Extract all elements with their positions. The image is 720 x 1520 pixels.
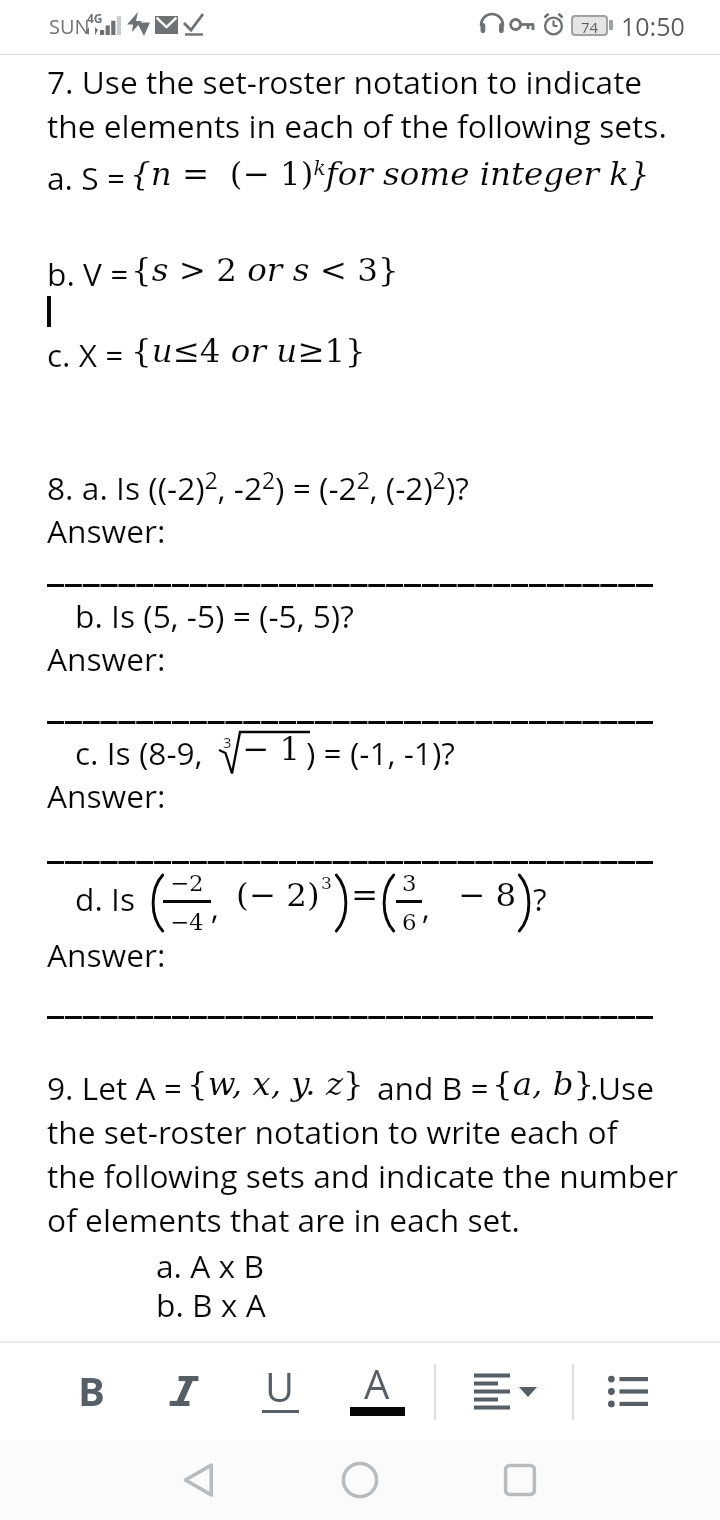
staticText: , xyxy=(211,885,219,928)
staticText: = xyxy=(351,876,379,914)
staticText: 3 xyxy=(321,873,332,893)
staticText: 9. Let A = xyxy=(47,1066,182,1109)
staticText: a. A x B xyxy=(156,1244,264,1287)
staticText: (− 2) xyxy=(236,876,320,914)
staticText: d. Is xyxy=(75,877,136,920)
staticText: 10:50 xyxy=(621,9,685,43)
staticText: b. Is (5, -5) = (-5, 5)? xyxy=(75,594,354,637)
staticText: the following sets and indicate the numb… xyxy=(47,1154,678,1197)
button[interactable]: B xyxy=(48,1341,134,1440)
staticText: {s > 2 or s < 3} xyxy=(131,251,399,289)
staticText: 6 xyxy=(402,909,417,936)
button[interactable]: Recent apps xyxy=(480,1440,560,1520)
button[interactable]: Back xyxy=(159,1440,239,1520)
staticText: −4 xyxy=(170,909,204,936)
staticText: . xyxy=(590,1066,599,1109)
staticText: ? xyxy=(533,877,547,920)
staticText: 74 xyxy=(581,17,599,34)
staticText: − 1 xyxy=(242,730,301,768)
staticText: and B = xyxy=(377,1066,489,1109)
staticText: 8. a. Is ((-2)2, -22) = (-22, (-2)2)? xyxy=(47,465,469,509)
staticText: Answer: xyxy=(47,637,166,680)
staticText: Answer: xyxy=(47,509,166,552)
staticText: a. S = xyxy=(47,156,134,199)
staticText: A xyxy=(364,1356,390,1410)
staticText: {w, x, y. z} xyxy=(187,1065,364,1103)
staticText: ) = (-1, -1)? xyxy=(306,731,455,774)
staticText: U xyxy=(265,1359,295,1413)
staticText: Use xyxy=(598,1066,654,1109)
staticText: {u≤4 or u≥1} xyxy=(131,332,366,370)
staticText: c. Is (8-9, xyxy=(75,731,203,774)
staticText: 3 xyxy=(402,870,417,897)
staticText: of elements that are in each set. xyxy=(47,1198,520,1241)
staticText: b. B x A xyxy=(156,1283,266,1326)
staticText: , xyxy=(422,885,430,928)
staticText: 7. Use the set-roster notation to indica… xyxy=(47,60,643,103)
staticText: {a, b} xyxy=(492,1065,595,1103)
button[interactable]: Bulleted list xyxy=(586,1341,672,1440)
staticText: B xyxy=(78,1363,105,1417)
button[interactable]: Home xyxy=(320,1440,400,1520)
button[interactable]: A xyxy=(334,1341,420,1440)
staticText: the set-roster notation to write each of xyxy=(47,1110,618,1153)
staticText: Answer: xyxy=(47,774,166,817)
staticText: Answer: xyxy=(47,933,166,976)
staticText: −2 xyxy=(170,870,204,897)
staticText: 3 xyxy=(223,732,232,752)
staticText: 4G xyxy=(87,10,103,26)
button[interactable] xyxy=(142,1341,228,1440)
staticText: − 8 xyxy=(458,876,517,914)
button[interactable]: U xyxy=(237,1341,323,1440)
button[interactable]: Alignment xyxy=(452,1341,562,1440)
staticText: c. X = xyxy=(47,333,132,376)
staticText: the elements in each of the following se… xyxy=(47,104,667,147)
staticText: b. V = xyxy=(47,252,137,295)
staticText: {n = (− 1)kfor some integer k} xyxy=(130,155,650,193)
staticText: SUN xyxy=(49,13,90,40)
